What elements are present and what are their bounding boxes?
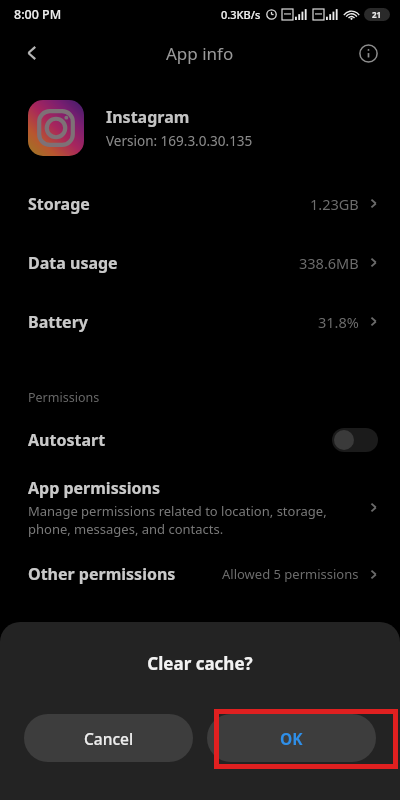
button[interactable]: Cancel <box>24 714 193 762</box>
button[interactable]: OK <box>207 714 376 762</box>
staticText: Battery <box>28 311 88 333</box>
button[interactable]: Back <box>12 33 52 73</box>
staticText: Clear cache? <box>147 652 253 675</box>
staticText: Permissions <box>28 389 100 406</box>
staticText: 0.3KB/s <box>221 7 261 22</box>
button[interactable]: Autostart <box>0 412 400 467</box>
staticText: Storage <box>28 193 90 215</box>
button[interactable]: App details <box>348 33 388 73</box>
button[interactable]: Battery <box>0 292 400 351</box>
button[interactable]: Other permissions <box>0 548 400 600</box>
staticText: Manage permissions related to location, … <box>28 502 357 538</box>
staticText: 21 <box>372 9 382 20</box>
staticText: App permissions <box>28 477 160 499</box>
staticText: 8:00 PM <box>14 6 62 23</box>
staticText: Cancel <box>84 728 134 749</box>
staticText: 338.6MB <box>299 253 359 273</box>
staticText: Instagram <box>106 106 190 128</box>
staticText: OK <box>280 728 303 749</box>
button[interactable]: App permissions <box>0 467 400 548</box>
button[interactable]: Data usage <box>0 233 400 292</box>
staticText: Data usage <box>28 252 118 274</box>
staticText: Version: 169.3.0.30.135 <box>106 132 253 150</box>
staticText: Allowed 5 permissions <box>222 565 359 583</box>
staticText: 1.23GB <box>310 194 359 214</box>
staticText: Autostart <box>28 429 106 451</box>
staticText: App info <box>166 42 234 65</box>
staticText: Other permissions <box>28 563 176 585</box>
button[interactable]: Storage <box>0 174 400 233</box>
staticText: 31.8% <box>318 312 359 332</box>
